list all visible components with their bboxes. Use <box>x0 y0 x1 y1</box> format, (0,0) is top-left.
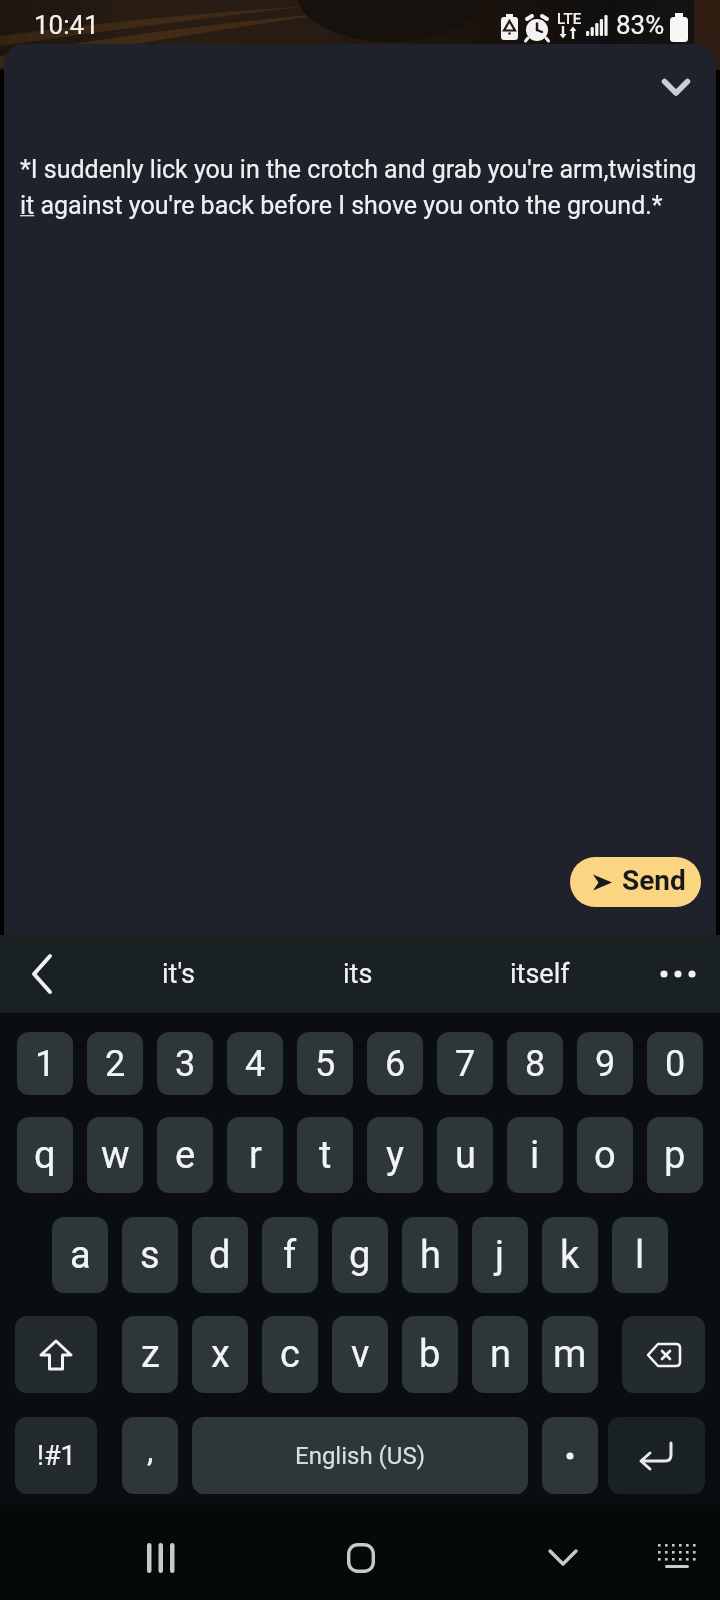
button[interactable] <box>324 1521 398 1595</box>
button[interactable]: h <box>402 1217 458 1293</box>
staticText: it's <box>162 958 195 990</box>
button[interactable] <box>15 1316 97 1393</box>
staticText: 7 <box>455 1043 476 1085</box>
button[interactable] <box>622 1316 705 1393</box>
staticText: its <box>343 958 373 990</box>
button[interactable]: 7 <box>437 1032 493 1095</box>
staticText: j <box>495 1233 505 1278</box>
staticText: 4 <box>245 1043 266 1085</box>
staticText: z <box>141 1332 160 1377</box>
button[interactable]: it's <box>108 935 248 1013</box>
button[interactable]: w <box>87 1117 143 1193</box>
staticText: m <box>553 1332 587 1377</box>
button[interactable]: n <box>472 1316 528 1393</box>
button[interactable]: 2 <box>87 1032 143 1095</box>
staticText: k <box>560 1233 580 1278</box>
button[interactable]: t <box>297 1117 353 1193</box>
button[interactable]: g <box>332 1217 388 1293</box>
staticText: e <box>175 1133 196 1178</box>
button[interactable] <box>526 1521 600 1595</box>
staticText: q <box>34 1133 56 1178</box>
button[interactable]: s <box>122 1217 178 1293</box>
staticText: 3 <box>175 1043 196 1085</box>
button[interactable]: c <box>262 1316 318 1393</box>
staticText: t <box>319 1133 332 1178</box>
button[interactable] <box>652 64 700 112</box>
button[interactable] <box>542 1417 598 1494</box>
button[interactable]: 0 <box>647 1032 703 1095</box>
button[interactable]: p <box>647 1117 703 1193</box>
button[interactable] <box>608 1417 705 1494</box>
button[interactable]: 5 <box>297 1032 353 1095</box>
staticText: , <box>147 1431 154 1469</box>
staticText: r <box>249 1133 262 1178</box>
staticText: u <box>455 1133 476 1178</box>
button[interactable]: f <box>262 1217 318 1293</box>
staticText: 9 <box>595 1043 616 1085</box>
button[interactable]: r <box>227 1117 283 1193</box>
button[interactable]: l <box>612 1217 668 1293</box>
staticText: c <box>280 1332 300 1377</box>
button[interactable]: Send <box>570 857 701 907</box>
staticText: 2 <box>105 1043 126 1085</box>
staticText: 5 <box>315 1043 336 1085</box>
staticText: i <box>530 1133 540 1178</box>
button[interactable]: 9 <box>577 1032 633 1095</box>
staticText: 10:41 <box>34 10 99 40</box>
button[interactable]: j <box>472 1217 528 1293</box>
button[interactable]: itself <box>470 935 610 1013</box>
button[interactable]: e <box>157 1117 213 1193</box>
button[interactable]: u <box>437 1117 493 1193</box>
button[interactable]: b <box>402 1316 458 1393</box>
button[interactable]: 8 <box>507 1032 563 1095</box>
button[interactable] <box>10 944 74 1004</box>
button[interactable] <box>642 1525 712 1591</box>
button[interactable]: English (US) <box>192 1417 528 1494</box>
staticText: Send <box>622 864 686 897</box>
staticText: n <box>490 1332 511 1377</box>
staticText: !#1 <box>37 1440 76 1472</box>
button[interactable]: 1 <box>17 1032 73 1095</box>
button[interactable]: y <box>367 1117 423 1193</box>
staticText: d <box>209 1233 231 1278</box>
staticText: 6 <box>385 1043 406 1085</box>
staticText: 8 <box>525 1043 546 1085</box>
staticText: English (US) <box>295 1442 425 1470</box>
button[interactable]: m <box>542 1316 598 1393</box>
button[interactable]: x <box>192 1316 248 1393</box>
button[interactable]: z <box>122 1316 178 1393</box>
staticText: g <box>349 1233 371 1278</box>
staticText: p <box>664 1133 686 1178</box>
button[interactable]: !#1 <box>15 1417 97 1494</box>
staticText: b <box>419 1332 441 1377</box>
button[interactable] <box>124 1521 198 1595</box>
staticText: 0 <box>665 1043 686 1085</box>
staticText: a <box>70 1233 91 1278</box>
button[interactable]: a <box>52 1217 108 1293</box>
button[interactable]: o <box>577 1117 633 1193</box>
button[interactable]: k <box>542 1217 598 1293</box>
button[interactable]: i <box>507 1117 563 1193</box>
staticText: f <box>283 1233 297 1278</box>
staticText: v <box>351 1332 370 1377</box>
staticText: itself <box>510 958 570 990</box>
staticText: h <box>420 1233 441 1278</box>
staticText: LTE <box>557 10 582 28</box>
staticText: o <box>594 1133 616 1178</box>
staticText: s <box>140 1233 160 1278</box>
button[interactable]: 3 <box>157 1032 213 1095</box>
staticText: y <box>386 1133 404 1178</box>
staticText: w <box>101 1133 130 1178</box>
button[interactable]: d <box>192 1217 248 1293</box>
button[interactable] <box>646 944 710 1004</box>
staticText: *I suddenly lick you in the crotch and g… <box>20 155 697 220</box>
button[interactable]: , <box>122 1417 178 1494</box>
staticText: l <box>635 1233 645 1278</box>
button[interactable]: its <box>288 935 428 1013</box>
button[interactable]: q <box>17 1117 73 1193</box>
staticText: 83% <box>616 10 665 40</box>
button[interactable]: 6 <box>367 1032 423 1095</box>
button[interactable]: 4 <box>227 1032 283 1095</box>
button[interactable]: v <box>332 1316 388 1393</box>
staticText: x <box>211 1332 230 1377</box>
